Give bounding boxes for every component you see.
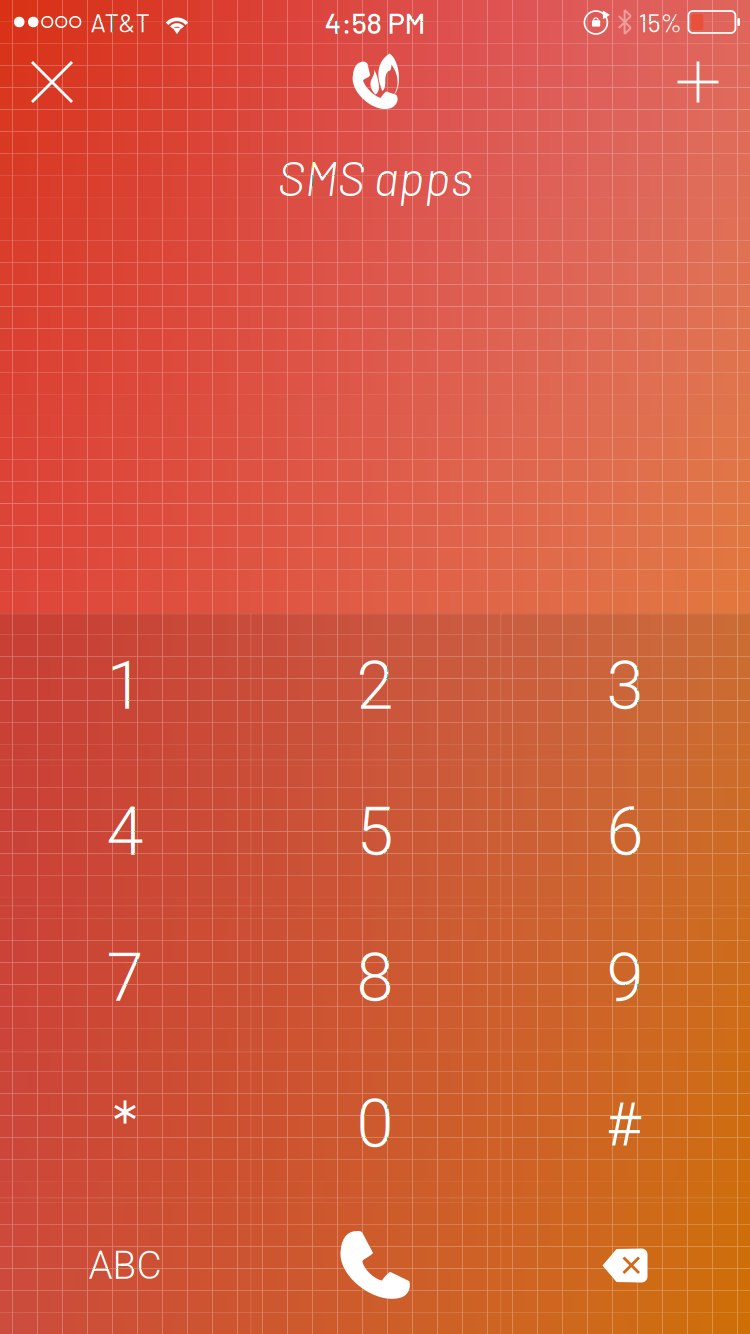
staticText: ABC bbox=[88, 1243, 161, 1288]
button[interactable]: 7 bbox=[0, 905, 250, 1051]
staticText: 0 bbox=[356, 1085, 393, 1163]
staticText: 2 bbox=[356, 647, 393, 725]
button[interactable]: 2 bbox=[250, 613, 500, 759]
button[interactable]: Delete bbox=[500, 1197, 750, 1334]
button[interactable]: 1 bbox=[0, 613, 250, 759]
button[interactable]: ABC bbox=[0, 1197, 250, 1334]
staticText: 3 bbox=[606, 647, 643, 725]
button[interactable]: 0 bbox=[250, 1051, 500, 1197]
staticText: 4 bbox=[106, 793, 143, 871]
button[interactable]: 3 bbox=[500, 613, 750, 759]
button[interactable]: 8 bbox=[250, 905, 500, 1051]
staticText: 5 bbox=[356, 793, 393, 871]
button[interactable]: 4 bbox=[0, 759, 250, 905]
button[interactable]: Close bbox=[0, 44, 104, 120]
staticText: 4:58 PM bbox=[324, 4, 425, 40]
button[interactable]: Pound bbox=[500, 1051, 750, 1197]
staticText: SMS apps bbox=[277, 148, 472, 206]
staticText: 6 bbox=[606, 793, 643, 871]
staticText: 1 bbox=[106, 647, 143, 725]
staticText: 9 bbox=[606, 939, 643, 1017]
staticText: AT&T bbox=[90, 7, 149, 37]
button[interactable]: Star bbox=[0, 1051, 250, 1197]
button[interactable]: Add number bbox=[646, 44, 750, 120]
staticText: 15% bbox=[638, 7, 681, 37]
button[interactable]: 9 bbox=[500, 905, 750, 1051]
staticText: 7 bbox=[106, 939, 143, 1017]
button[interactable]: Call bbox=[250, 1197, 500, 1334]
staticText: 8 bbox=[356, 939, 393, 1017]
button[interactable]: 5 bbox=[250, 759, 500, 905]
button[interactable]: 6 bbox=[500, 759, 750, 905]
